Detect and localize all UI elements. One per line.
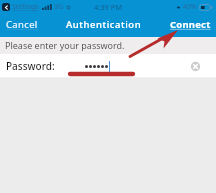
staticText: 49%	[183, 2, 197, 12]
staticText: Please enter your password.	[5, 39, 125, 51]
button[interactable]: Cancel	[6, 18, 38, 31]
button[interactable]: Connect	[170, 18, 211, 31]
staticText: Settings	[12, 2, 39, 12]
staticText: Password:	[6, 59, 55, 73]
staticText: Connect	[170, 18, 211, 31]
staticText: 4:39 PM	[94, 2, 123, 12]
staticText: Authentication	[66, 18, 142, 31]
staticText: 3G	[54, 2, 64, 12]
button[interactable]: Clear text	[190, 61, 201, 72]
staticText: Cancel	[6, 18, 38, 31]
button[interactable]: Back to Settings	[2, 3, 10, 11]
